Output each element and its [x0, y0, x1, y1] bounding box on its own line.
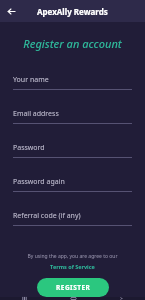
- staticText: Referral code (if any): [13, 211, 81, 221]
- button[interactable]: Terms of Service: [46, 262, 99, 271]
- staticText: REGISTER: [56, 283, 91, 292]
- staticText: Your name: [13, 75, 49, 85]
- staticText: Email address: [13, 109, 59, 119]
- button[interactable]: Referral code (if any): [13, 201, 132, 235]
- button[interactable]: Your name: [13, 65, 132, 99]
- staticText: By using the app, you are agree to our: [0, 253, 145, 260]
- staticText: Password: [13, 143, 45, 153]
- button[interactable]: Password: [13, 133, 132, 167]
- staticText: ApexAlly Rewards: [37, 6, 108, 17]
- staticText: Password again: [13, 177, 65, 187]
- button[interactable]: Recent apps: [0, 297, 49, 300]
- staticText: Register an account: [0, 36, 145, 51]
- button[interactable]: Back: [97, 297, 145, 300]
- button[interactable]: REGISTER: [37, 278, 109, 297]
- button[interactable]: Back: [3, 3, 20, 20]
- button[interactable]: Password again: [13, 167, 132, 201]
- button[interactable]: Email address: [13, 99, 132, 133]
- button[interactable]: Home: [49, 297, 97, 300]
